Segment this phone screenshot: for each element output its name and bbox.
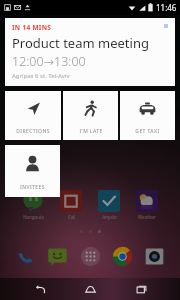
button[interactable]: Invitees bbox=[5, 145, 60, 197]
staticText: IN 14 MINS bbox=[12, 23, 52, 32]
staticText: Weather bbox=[138, 214, 156, 220]
staticText: Product team meeting bbox=[12, 34, 149, 52]
button[interactable]: Get taxi bbox=[120, 91, 175, 140]
staticText: DIRECTIONS bbox=[16, 128, 50, 135]
button[interactable]: Home bbox=[79, 278, 101, 300]
other: Invitees bbox=[24, 155, 41, 172]
staticText: I'M LATE bbox=[79, 128, 103, 135]
staticText: INVITEES bbox=[20, 184, 45, 191]
staticText: 11:46 bbox=[156, 2, 177, 13]
other: Directions bbox=[25, 100, 42, 117]
other: I'm late bbox=[82, 100, 99, 117]
button[interactable]: Back bbox=[29, 278, 51, 300]
staticText: Any.do bbox=[102, 214, 117, 220]
staticText: Cal bbox=[68, 214, 75, 220]
button[interactable]: Recent apps bbox=[130, 278, 152, 300]
staticText: 12:00→13:00 bbox=[12, 53, 86, 70]
button[interactable]: Directions bbox=[5, 91, 61, 140]
other: Get taxi bbox=[139, 100, 156, 117]
staticText: Agripas 6 st. Tel-Aviv bbox=[12, 72, 70, 80]
button[interactable]: IN 14 MINS bbox=[5, 18, 175, 86]
button[interactable]: I'm late bbox=[63, 91, 118, 140]
staticText: GET TAXI bbox=[135, 128, 160, 135]
staticText: Hangouts bbox=[23, 214, 44, 220]
